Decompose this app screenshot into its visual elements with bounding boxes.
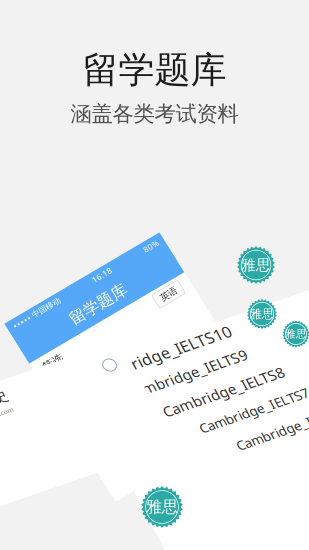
staticText: 留学题库 — [62, 345, 126, 365]
staticText: 雅思 — [146, 497, 178, 517]
staticText: 历史 — [0, 412, 4, 430]
staticText: Cambridge_IELTS7 — [195, 426, 309, 444]
staticText: 留学题库 — [82, 48, 226, 92]
staticText: 英语 — [150, 376, 168, 387]
staticText: 雅思 — [241, 256, 271, 274]
staticText: Cambridge_IELTS10 — [84, 374, 233, 395]
staticText: ••••• — [10, 325, 30, 337]
staticText: 雅思 — [285, 327, 307, 340]
staticText: 涵盖各类考试资料 — [70, 101, 238, 127]
staticText: Cambridge_IELTS9 — [121, 391, 248, 411]
staticText: Cambridge_IELTS8 — [158, 409, 285, 428]
staticText: 雅思 — [250, 307, 274, 321]
staticText: Cambridge_IELTS6 — [232, 443, 309, 461]
